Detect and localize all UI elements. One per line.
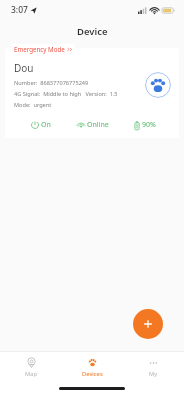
button[interactable]: My bbox=[123, 352, 184, 382]
button[interactable]: Devices bbox=[62, 352, 123, 382]
staticText: 3:07 bbox=[11, 4, 28, 16]
staticText: Online bbox=[87, 120, 109, 130]
staticText: My bbox=[149, 370, 158, 378]
staticText: Number: 868377076775249 bbox=[14, 79, 89, 87]
staticText: Device bbox=[77, 25, 108, 38]
staticText: Map bbox=[25, 370, 38, 378]
staticText: 90% bbox=[142, 120, 156, 130]
staticText: Dou bbox=[14, 61, 34, 75]
button[interactable]: Online bbox=[67, 120, 119, 130]
button[interactable]: Emergency Mode bbox=[12, 44, 75, 54]
staticText: Mode: urgent bbox=[14, 101, 52, 109]
button[interactable]: Pet avatar bbox=[145, 72, 171, 98]
button[interactable]: 90% bbox=[119, 120, 171, 130]
button[interactable]: On bbox=[14, 120, 67, 130]
staticText: Devices bbox=[82, 370, 103, 378]
staticText: Emergency Mode bbox=[14, 45, 65, 53]
button[interactable]: Dou bbox=[5, 48, 179, 138]
staticText: On bbox=[41, 120, 51, 130]
button[interactable]: Map bbox=[0, 352, 62, 382]
staticText: 4G Signal: Middle to high Version: 1.5 bbox=[14, 90, 118, 98]
button[interactable]: Add device bbox=[133, 309, 163, 339]
